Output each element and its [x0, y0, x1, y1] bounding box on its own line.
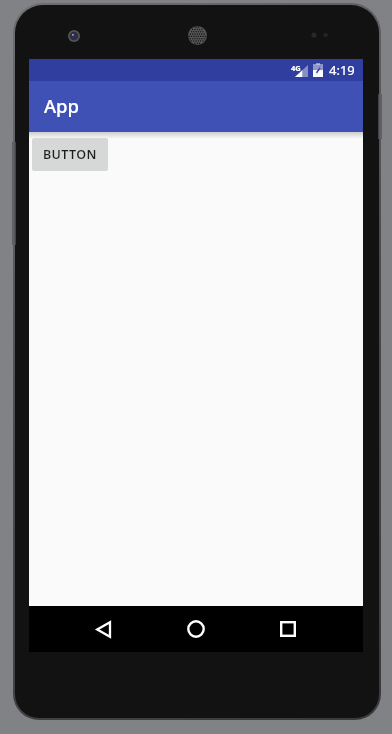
staticText: 4:19	[329, 61, 355, 79]
staticText: BUTTON	[43, 146, 97, 163]
button[interactable]: Home	[172, 606, 220, 652]
button[interactable]: BUTTON	[32, 138, 108, 171]
staticText: App	[44, 93, 80, 118]
button[interactable]: Back	[79, 606, 127, 652]
staticText: 4G	[291, 63, 301, 73]
button[interactable]: Recent apps	[264, 606, 312, 652]
